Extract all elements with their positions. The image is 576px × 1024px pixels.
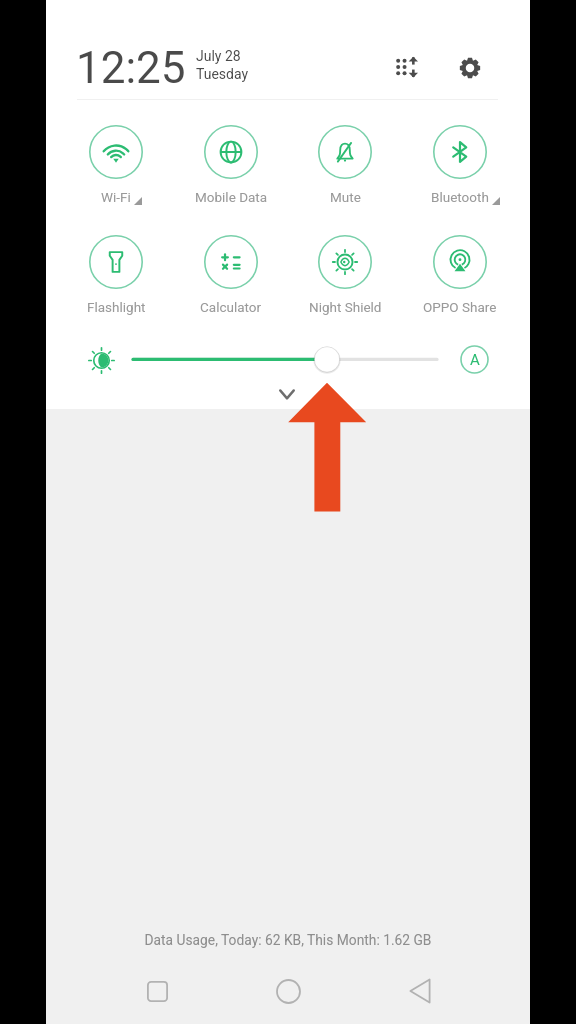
button[interactable]: Calculator xyxy=(175,226,287,324)
staticText: July 28 xyxy=(196,48,241,64)
staticText: 12:25 xyxy=(76,42,186,94)
staticText: Mute xyxy=(330,189,361,205)
button[interactable]: OPPO Share xyxy=(404,226,516,324)
button[interactable]: Recents xyxy=(132,966,182,1016)
staticText: Wi-Fi xyxy=(101,189,131,205)
staticText: Data Usage, Today: 62 KB, This Month: 1.… xyxy=(46,932,530,948)
button[interactable]: Settings xyxy=(448,46,492,90)
button[interactable]: Brightness xyxy=(79,338,123,382)
staticText: Night Shield xyxy=(309,299,382,315)
staticText: Tuesday xyxy=(196,66,249,82)
button[interactable]: Wi-Fi xyxy=(60,116,172,214)
button[interactable]: Mobile Data xyxy=(175,116,287,214)
staticText: Flashlight xyxy=(87,299,146,315)
staticText: OPPO Share xyxy=(423,299,497,315)
button[interactable]: Bluetooth xyxy=(404,116,516,214)
button[interactable]: Mute xyxy=(289,116,401,214)
button[interactable]: Night Shield xyxy=(289,226,401,324)
staticText: Calculator xyxy=(200,299,262,315)
button[interactable]: Home xyxy=(263,966,313,1016)
button[interactable] xyxy=(123,345,448,374)
staticText: A xyxy=(470,351,480,369)
button[interactable]: Flashlight xyxy=(60,226,172,324)
button[interactable]: Auto brightness xyxy=(445,330,503,388)
staticText: Mobile Data xyxy=(195,189,268,205)
button[interactable]: Data usage xyxy=(387,48,431,92)
button[interactable]: Back xyxy=(395,966,445,1016)
staticText: Bluetooth xyxy=(431,189,489,205)
button[interactable]: Collapse xyxy=(259,366,315,422)
